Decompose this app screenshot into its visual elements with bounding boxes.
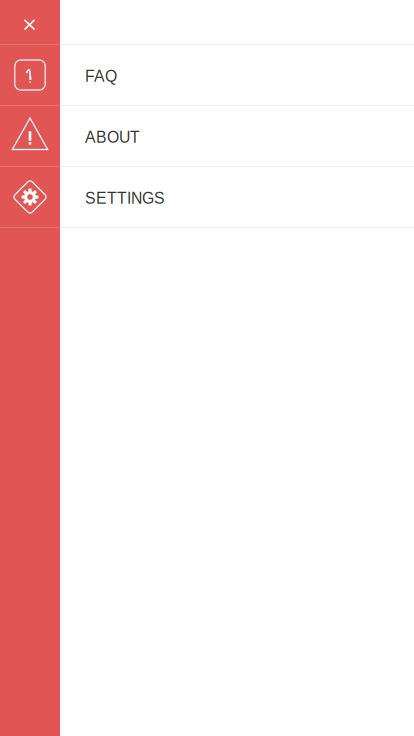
staticText: FAQ (85, 67, 117, 85)
button[interactable]: FAQ (0, 45, 414, 105)
staticText: SETTINGS (85, 189, 165, 207)
button[interactable]: ABOUT (0, 106, 414, 166)
button[interactable]: Close menu (0, 0, 414, 44)
staticText: ABOUT (85, 128, 140, 146)
button[interactable]: SETTINGS (0, 167, 414, 227)
